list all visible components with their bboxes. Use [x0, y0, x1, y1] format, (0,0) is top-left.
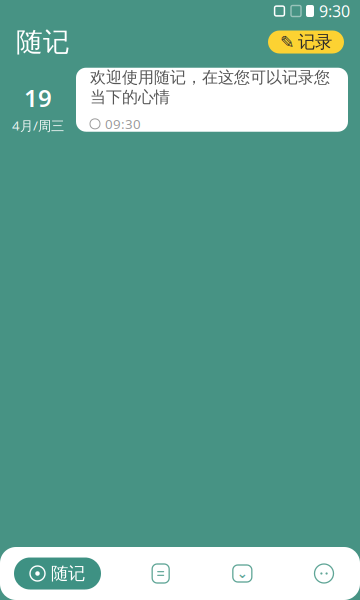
staticText: 欢迎使用随记，在这您可以记录您当下的心情 [90, 68, 330, 107]
staticText: 9:30 [319, 0, 350, 22]
staticText: 19 [24, 82, 52, 114]
button[interactable]: 心情 [220, 551, 264, 595]
staticText: 09:30 [105, 115, 141, 133]
staticText: ✎ [280, 32, 295, 52]
button[interactable]: 随记 [14, 557, 101, 589]
staticText: 记录 [298, 31, 332, 53]
staticText: 随记 [51, 563, 85, 584]
button[interactable]: ✎ [268, 30, 344, 53]
button[interactable]: 我的 [302, 551, 346, 595]
staticText: ⌄ [237, 566, 248, 581]
staticText: 4月/周三 [12, 117, 64, 134]
staticText: 随记 [16, 26, 70, 58]
button[interactable]: 列表 [139, 551, 183, 595]
